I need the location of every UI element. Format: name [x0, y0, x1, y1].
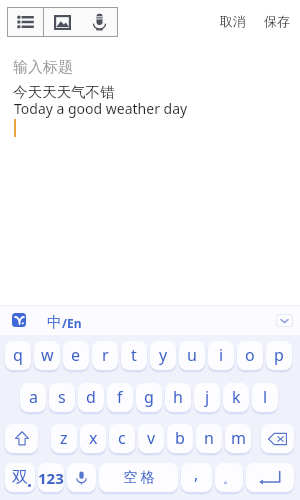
button[interactable]: f: [107, 383, 133, 412]
staticText: 保存: [264, 13, 290, 29]
button[interactable]: w: [34, 341, 60, 370]
staticText: d: [86, 386, 96, 408]
staticText: w: [41, 344, 54, 366]
button[interactable]: o: [237, 341, 263, 370]
button[interactable]: s: [49, 383, 75, 412]
staticText: 双: [12, 468, 28, 488]
staticText: c: [118, 427, 126, 449]
button[interactable]: 输入标题: [0, 40, 300, 300]
button[interactable]: p: [266, 341, 292, 370]
button[interactable]: Voice input: [81, 8, 117, 36]
staticText: /En: [62, 315, 82, 331]
button[interactable]: q: [5, 341, 31, 370]
staticText: Today a good weather day: [14, 99, 188, 118]
button[interactable]: n: [196, 424, 222, 453]
button[interactable]: Shuangpin: [5, 463, 35, 492]
button[interactable]: l: [252, 383, 278, 412]
staticText: o: [245, 344, 255, 366]
button[interactable]: 取消: [212, 9, 253, 32]
staticText: y: [159, 344, 168, 366]
staticText: u: [187, 344, 197, 366]
button[interactable]: i: [208, 341, 234, 370]
staticText: g: [144, 386, 154, 408]
button[interactable]: Enter: [246, 463, 294, 492]
staticText: p: [274, 344, 284, 366]
button[interactable]: Checklist: [8, 8, 43, 36]
staticText: s: [58, 386, 66, 408]
staticText: x: [89, 427, 98, 449]
button[interactable]: Numbers: [38, 463, 64, 492]
staticText: r: [102, 344, 109, 366]
button[interactable]: m: [225, 424, 251, 453]
staticText: i: [219, 344, 224, 366]
staticText: h: [173, 386, 183, 408]
staticText: 输入标题: [13, 58, 73, 77]
staticText: 。: [223, 471, 235, 486]
staticText: t: [131, 344, 137, 366]
staticText: e: [71, 344, 81, 366]
staticText: v: [147, 427, 156, 449]
button[interactable]: v: [138, 424, 164, 453]
staticText: 今天天天气不错: [13, 83, 115, 101]
button[interactable]: u: [179, 341, 205, 370]
button[interactable]: h: [165, 383, 191, 412]
button[interactable]: k: [223, 383, 249, 412]
button[interactable]: Shift: [5, 424, 38, 453]
button[interactable]: e: [63, 341, 89, 370]
button[interactable]: Comma: [181, 463, 212, 492]
staticText: 取消: [220, 13, 246, 29]
button[interactable]: Delete: [261, 424, 294, 453]
staticText: f: [117, 386, 123, 408]
staticText: l: [263, 386, 268, 408]
button[interactable]: d: [78, 383, 104, 412]
button[interactable]: r: [92, 341, 118, 370]
staticText: q: [13, 344, 23, 366]
button[interactable]: Period: [215, 463, 243, 492]
staticText: 空格: [122, 469, 156, 487]
button[interactable]: y: [150, 341, 176, 370]
button[interactable]: a: [20, 383, 46, 412]
button[interactable]: 保存: [256, 9, 297, 32]
button[interactable]: Input method settings: [12, 313, 26, 327]
staticText: ,: [194, 463, 199, 485]
staticText: 中: [47, 313, 62, 332]
staticText: m: [231, 427, 246, 449]
button[interactable]: Voice input: [67, 463, 96, 492]
button[interactable]: 中: [47, 311, 89, 333]
button[interactable]: Insert image: [44, 8, 81, 36]
staticText: b: [175, 427, 185, 449]
button[interactable]: g: [136, 383, 162, 412]
button[interactable]: z: [51, 424, 77, 453]
button[interactable]: b: [167, 424, 193, 453]
button[interactable]: c: [109, 424, 135, 453]
staticText: j: [205, 386, 210, 408]
button[interactable]: j: [194, 383, 220, 412]
button[interactable]: Space: [99, 463, 178, 492]
staticText: n: [204, 427, 214, 449]
button[interactable]: Hide keyboard: [277, 315, 292, 326]
button[interactable]: x: [80, 424, 106, 453]
staticText: k: [232, 386, 241, 408]
staticText: a: [29, 386, 38, 408]
button[interactable]: t: [121, 341, 147, 370]
staticText: 123: [38, 468, 64, 488]
staticText: z: [60, 427, 68, 449]
